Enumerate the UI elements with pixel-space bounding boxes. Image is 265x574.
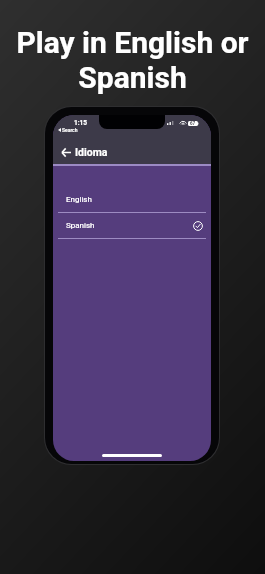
staticText: 1:15 <box>74 119 88 127</box>
staticText: Spanish <box>66 221 95 230</box>
staticText: Search <box>62 127 78 133</box>
button[interactable]: Spanish <box>53 213 211 239</box>
staticText: Idioma <box>75 146 108 158</box>
staticText: English <box>66 195 92 204</box>
button[interactable]: English <box>53 187 211 213</box>
staticText: 67 <box>190 121 196 126</box>
staticText: Play in English or Spanish <box>0 25 265 95</box>
button[interactable]: Back <box>58 144 74 160</box>
